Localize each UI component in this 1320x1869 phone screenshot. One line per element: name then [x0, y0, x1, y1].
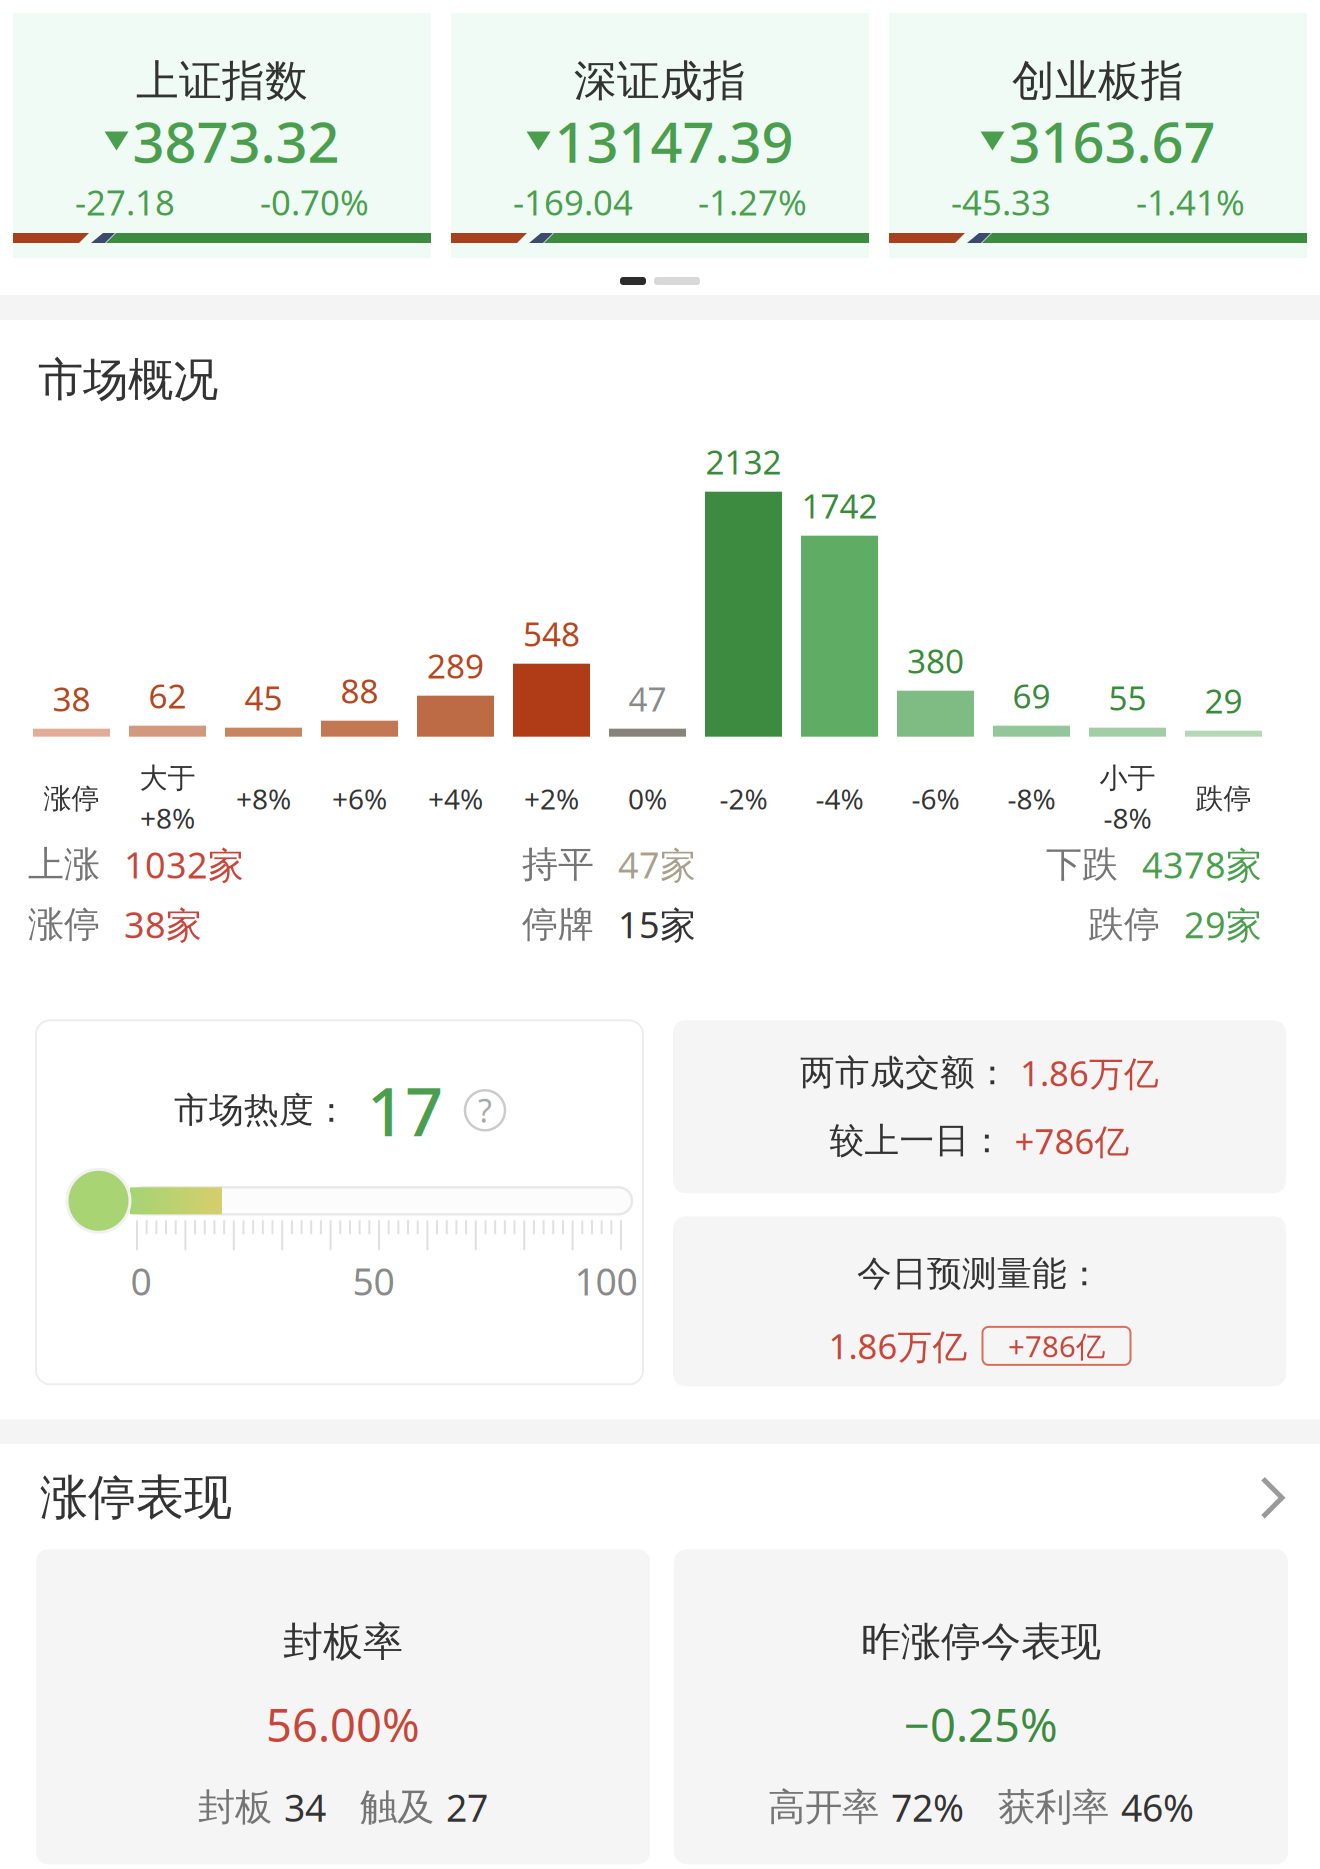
staticText: 跌停 [1088, 902, 1160, 946]
staticText: 45 [244, 675, 282, 720]
staticText: 市场概况 [38, 352, 218, 408]
staticText: +6% [332, 780, 387, 817]
staticText: 47 [628, 676, 666, 721]
button[interactable]: 创业板指 [889, 13, 1307, 258]
staticText: -4% [815, 780, 863, 817]
staticText: 获利率 [998, 1784, 1109, 1830]
staticText: 62 [148, 673, 186, 718]
button[interactable]: 涨停表现 [2, 1444, 1320, 1549]
staticText: 2132 [705, 439, 781, 484]
staticText: −0.25% [904, 1694, 1058, 1755]
staticText: 涨停表现 [40, 1468, 232, 1527]
staticText: 涨停 [28, 902, 100, 946]
staticText: 56.00% [266, 1694, 420, 1755]
staticText: 1.86万亿 [1020, 1050, 1159, 1096]
staticText: -2% [719, 780, 767, 817]
staticText: 0% [628, 780, 667, 817]
staticText: 市场热度： [174, 1089, 349, 1132]
staticText: 289 [427, 643, 484, 688]
staticText: +8% [140, 799, 195, 836]
staticText: 创业板指 [1012, 55, 1184, 107]
staticText: 15家 [618, 900, 696, 948]
staticText: 50 [352, 1256, 394, 1306]
staticText: 高开率 [768, 1784, 879, 1830]
staticText: 46% [1121, 1783, 1194, 1832]
staticText: -6% [911, 780, 959, 817]
staticText: +8% [236, 780, 291, 817]
staticText: 17 [367, 1066, 443, 1154]
staticText: 今日预测量能： [857, 1252, 1102, 1295]
button[interactable]: 上证指数 [13, 13, 431, 258]
staticText: 跌停 [1195, 781, 1251, 816]
staticText: 88 [340, 668, 378, 713]
staticText: -1.27% [698, 179, 807, 225]
staticText: 34 [284, 1783, 326, 1832]
staticText: 下跌 [1046, 842, 1118, 887]
staticText: 72% [891, 1783, 964, 1832]
button[interactable]: 封板率 [36, 1549, 650, 1864]
staticText: 1742 [801, 483, 877, 528]
staticText: 较上一日： [829, 1119, 1004, 1162]
staticText: 持平 [522, 842, 594, 887]
staticText: 29 [1204, 678, 1242, 723]
staticText: 47家 [618, 841, 696, 888]
staticText: 上涨 [28, 842, 100, 887]
staticText: 27 [446, 1783, 488, 1832]
staticText: +4% [428, 780, 483, 817]
staticText: 封板率 [283, 1617, 403, 1666]
staticText: -8% [1007, 780, 1055, 817]
staticText: 两市成交额： [800, 1051, 1010, 1094]
staticText: 触及 [360, 1784, 434, 1830]
staticText: -45.33 [951, 179, 1051, 225]
staticText: 4378家 [1142, 841, 1262, 888]
staticText: -8% [1103, 799, 1151, 836]
staticText: 0 [130, 1256, 151, 1306]
staticText: 55 [1108, 675, 1146, 720]
staticText: 昨涨停今表现 [861, 1617, 1101, 1666]
staticText: 38 [52, 676, 90, 721]
staticText: 小于 [1099, 761, 1155, 795]
staticText: -27.18 [75, 179, 175, 225]
staticText: 涨停 [43, 781, 99, 816]
staticText: -169.04 [513, 179, 633, 225]
staticText: -1.41% [1136, 179, 1245, 225]
staticText: 100 [574, 1256, 637, 1306]
staticText: +786亿 [1008, 1326, 1105, 1365]
staticText: 1.86万亿 [828, 1323, 967, 1369]
button[interactable]: 昨涨停今表现 [674, 1549, 1288, 1864]
staticText: 29家 [1184, 900, 1262, 948]
staticText: +786亿 [1014, 1118, 1129, 1164]
staticText: 大于 [139, 761, 195, 795]
button[interactable]: 两市成交额： [673, 1020, 1286, 1193]
button[interactable]: 市场热度： [36, 1020, 643, 1384]
staticText: +2% [524, 780, 579, 817]
button[interactable]: 今日预测量能： [673, 1216, 1286, 1386]
staticText: ? [478, 1089, 492, 1131]
staticText: 13147.39 [554, 104, 793, 178]
staticText: 69 [1012, 673, 1050, 718]
staticText: 3873.32 [132, 104, 339, 178]
staticText: 38家 [124, 900, 202, 948]
staticText: 548 [523, 611, 580, 656]
staticText: 380 [907, 638, 964, 683]
staticText: 3163.67 [1008, 104, 1215, 178]
staticText: 上证指数 [136, 55, 308, 107]
staticText: 封板 [198, 1784, 272, 1830]
staticText: 1032家 [124, 841, 244, 888]
staticText: 深证成指 [574, 55, 746, 107]
button[interactable]: 深证成指 [451, 13, 869, 258]
staticText: 停牌 [522, 902, 594, 946]
staticText: -0.70% [260, 179, 369, 225]
